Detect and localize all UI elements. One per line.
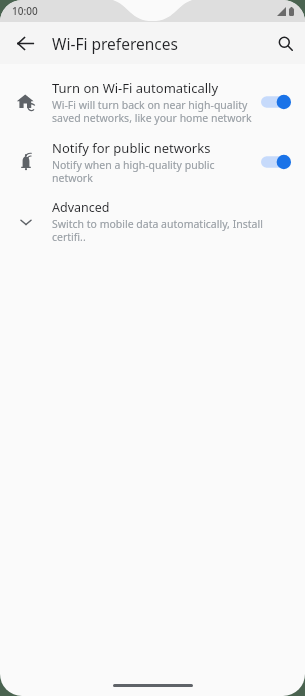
button[interactable]: Toggle <box>261 90 295 114</box>
staticText: 10:00 <box>12 4 38 18</box>
staticText: Turn on Wi-Fi automatically <box>52 79 219 97</box>
staticText: Notify for public networks <box>52 139 211 157</box>
button[interactable]: Back <box>10 28 40 58</box>
button[interactable]: Advanced <box>0 192 305 251</box>
staticText: Switch to mobile data automatically, Ins… <box>52 217 295 244</box>
staticText: Notify when a high-quality public networ… <box>52 158 255 185</box>
button[interactable]: Toggle <box>261 150 295 174</box>
staticText: Wi-Fi will turn back on near high-qualit… <box>52 98 252 125</box>
button[interactable]: Notify for public networks <box>0 132 305 192</box>
staticText: Wi-Fi preferences <box>52 33 178 54</box>
button[interactable]: Search <box>269 27 301 59</box>
button[interactable]: Turn on Wi-Fi automatically <box>0 72 305 132</box>
staticText: Advanced <box>52 199 110 216</box>
